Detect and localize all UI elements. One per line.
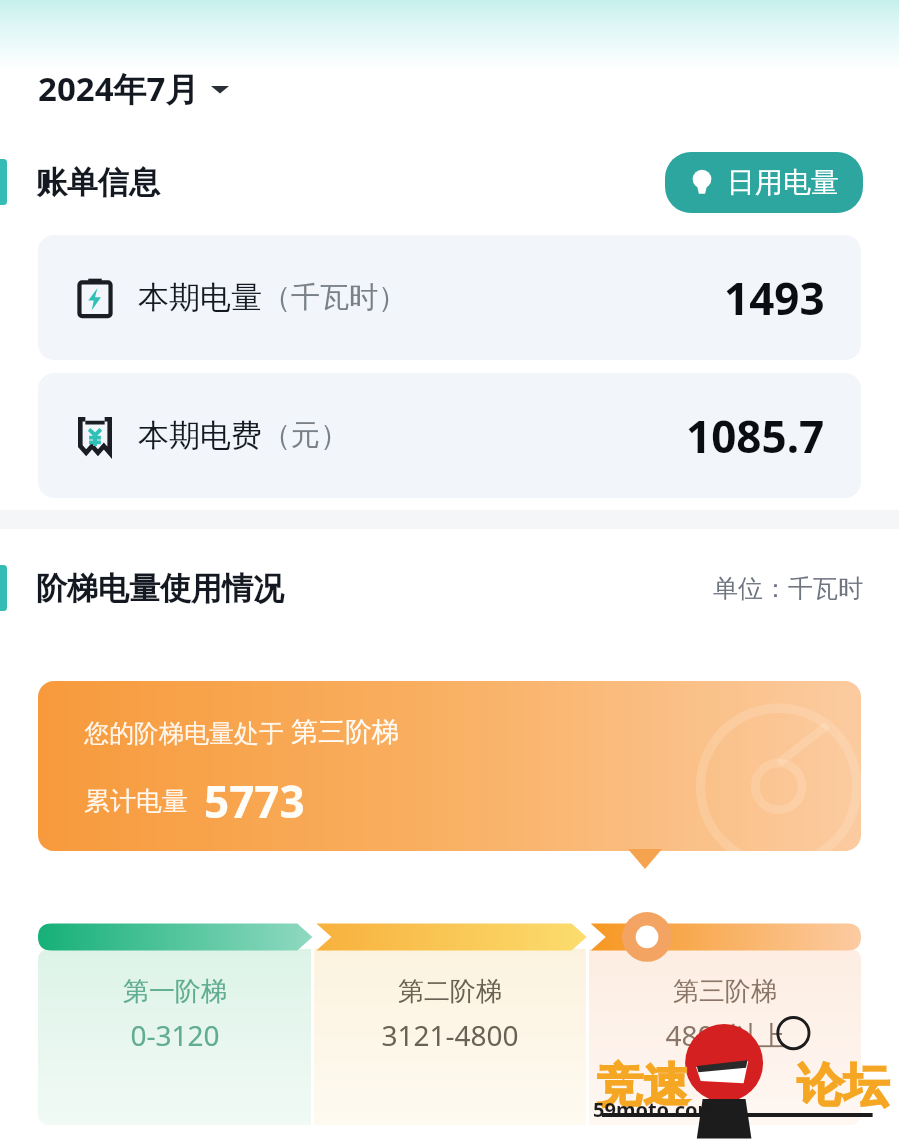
- button[interactable]: 本期电费: [38, 373, 861, 498]
- staticText: 阶梯电量使用情况: [36, 569, 284, 608]
- staticText: 4801以上: [665, 1016, 786, 1054]
- staticText: 本期电费: [138, 416, 262, 455]
- button[interactable]: 第二阶梯: [314, 975, 586, 1054]
- staticText: 第三阶梯: [291, 715, 399, 749]
- staticText: 1493: [724, 268, 825, 328]
- staticText: （千瓦时）: [262, 279, 407, 316]
- staticText: 1085.7: [686, 406, 825, 466]
- staticText: 累计电量: [84, 785, 188, 818]
- button[interactable]: 日用电量: [665, 152, 863, 213]
- button[interactable]: [589, 949, 861, 1125]
- button[interactable]: 您的阶梯电量处于: [38, 681, 861, 851]
- button[interactable]: [314, 949, 586, 1125]
- button[interactable]: 2024年7月: [38, 66, 229, 111]
- staticText: 第三阶梯: [673, 975, 777, 1008]
- staticText: 本期电量: [138, 278, 262, 317]
- staticText: 59moto.com: [593, 1096, 717, 1123]
- staticText: 3121-4800: [381, 1016, 519, 1054]
- staticText: （元）: [262, 417, 349, 454]
- button[interactable]: [38, 949, 311, 1125]
- staticText: 0-3120: [130, 1016, 220, 1054]
- staticText: 第二阶梯: [398, 975, 502, 1008]
- staticText: 论坛: [797, 1057, 889, 1115]
- staticText: 单位：千瓦时: [713, 573, 863, 604]
- staticText: 您的阶梯电量处于: [84, 715, 291, 749]
- staticText: 5773: [204, 771, 305, 831]
- button[interactable]: 第三阶梯: [589, 975, 861, 1054]
- button[interactable]: 第一阶梯: [38, 975, 311, 1054]
- staticText: 第一阶梯: [123, 975, 227, 1008]
- staticText: 2024年7月: [38, 66, 199, 111]
- staticText: 竞速: [597, 1057, 689, 1115]
- staticText: 日用电量: [727, 165, 839, 200]
- staticText: 账单信息: [36, 163, 160, 202]
- button[interactable]: 本期电量: [38, 235, 861, 360]
